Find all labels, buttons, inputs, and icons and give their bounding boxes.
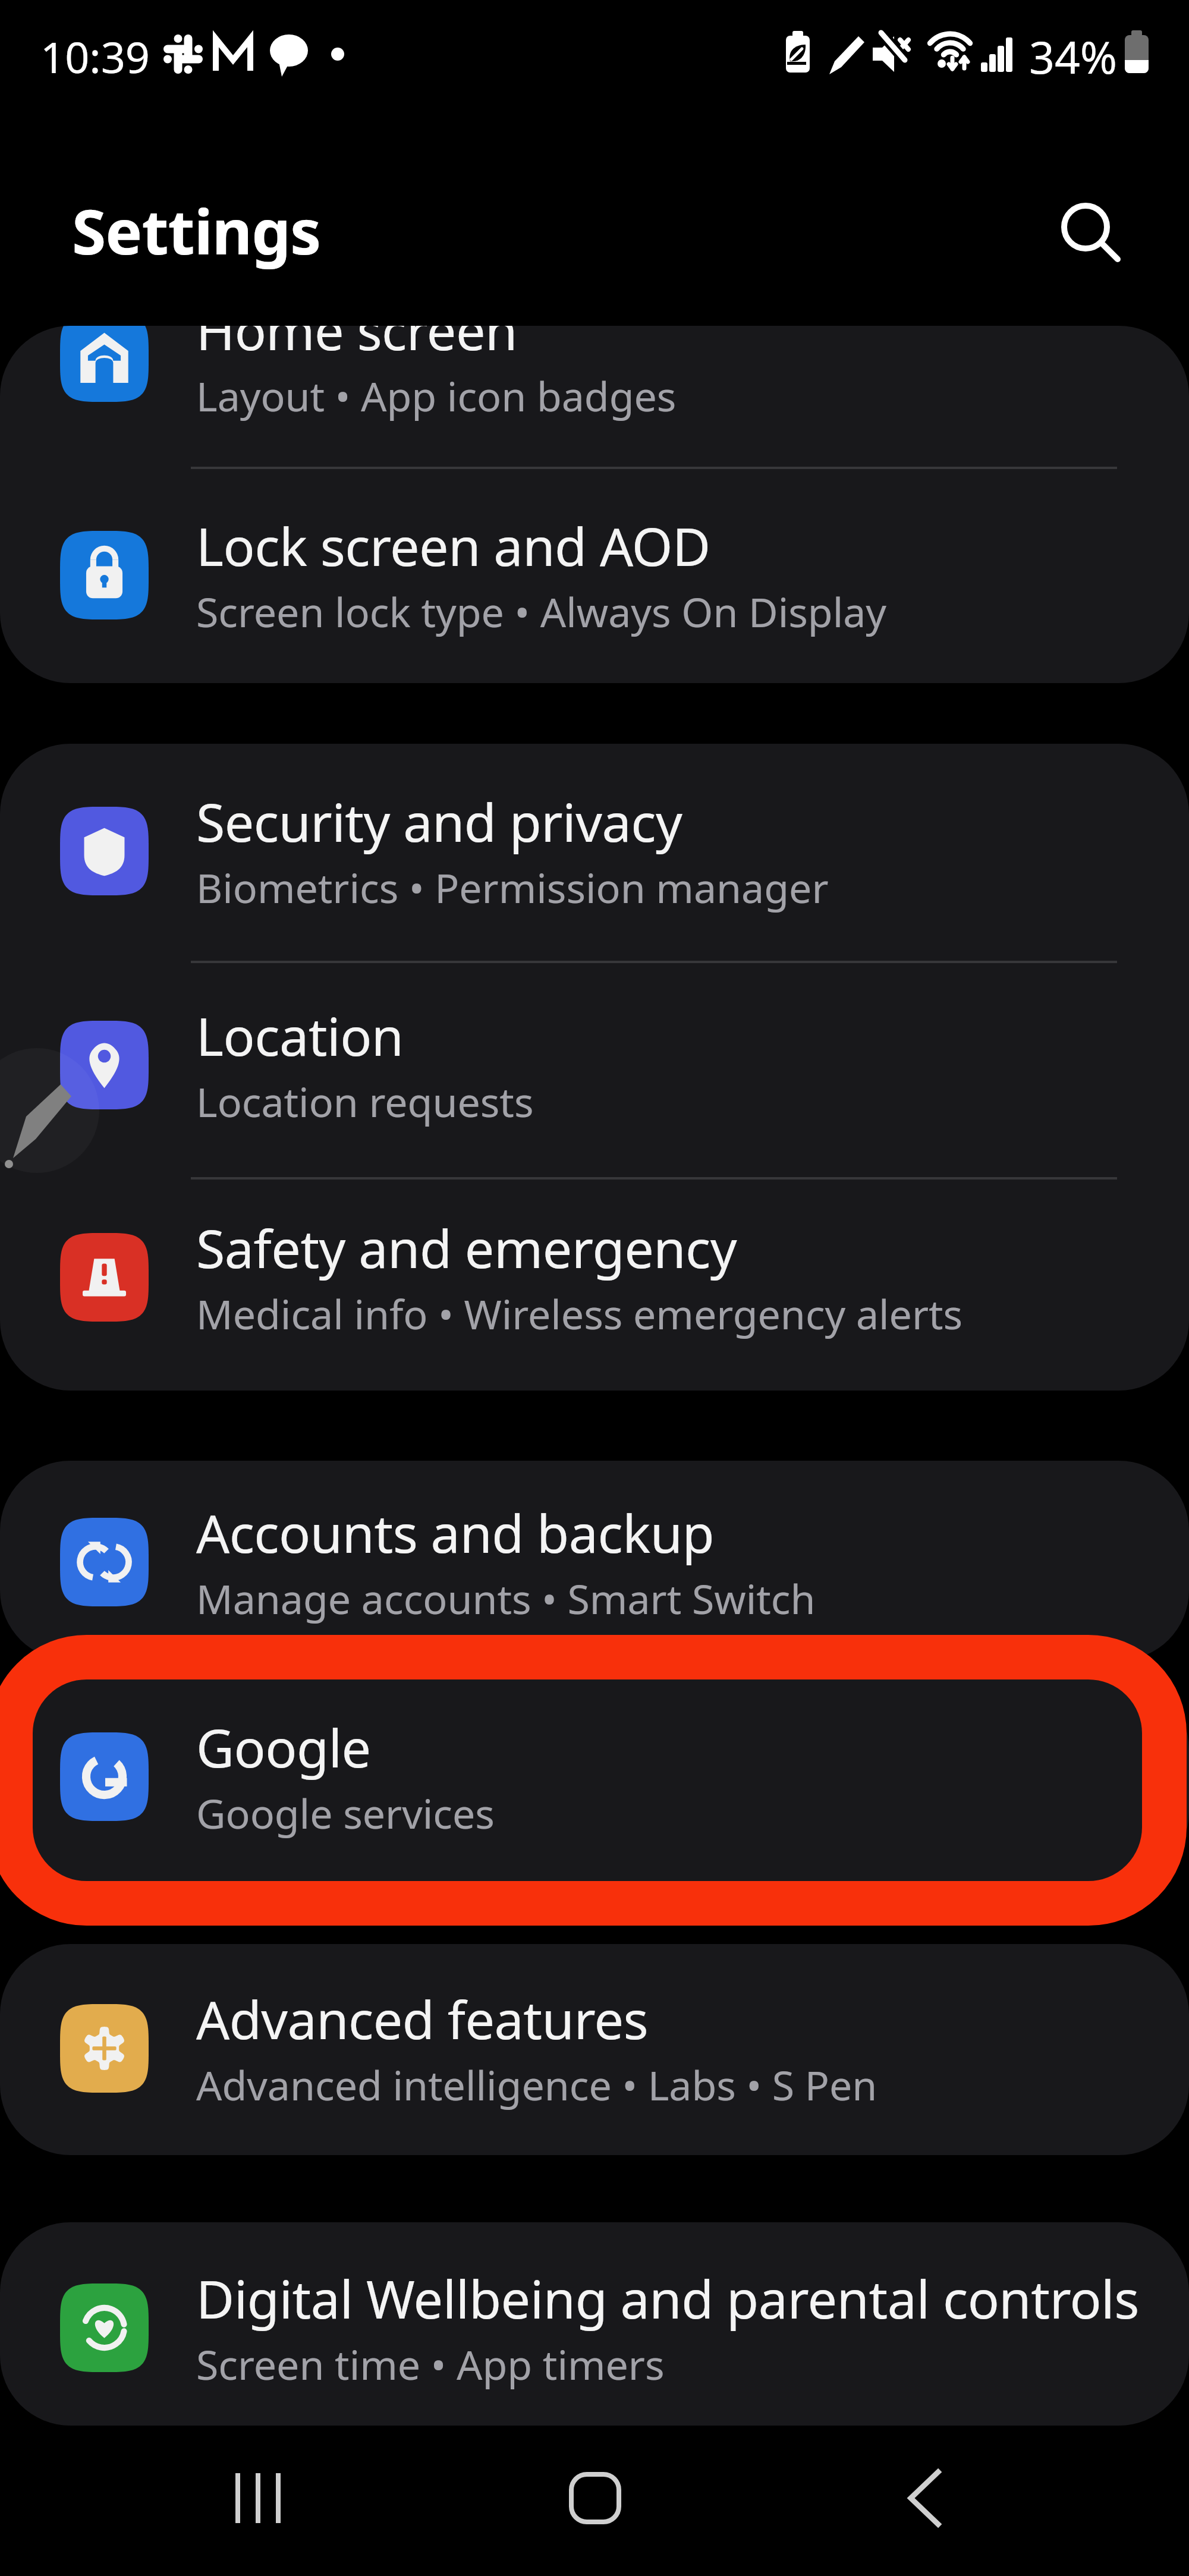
staticText: Layout • App icon badges — [196, 368, 677, 423]
staticText: Screen lock type • Always On Display — [196, 584, 887, 639]
staticText: Safety and emergency — [196, 1212, 737, 1284]
staticText: Google services — [196, 1785, 495, 1841]
staticText: Lock screen and AOD — [196, 510, 710, 581]
staticText: Advanced intelligence • Labs • S Pen — [196, 2057, 877, 2112]
staticText: 10:39 — [40, 27, 150, 86]
button[interactable]: Home screen — [0, 326, 1189, 442]
button[interactable]: Accounts and backup — [0, 1497, 1189, 1644]
button[interactable]: Home — [535, 2437, 654, 2556]
button[interactable]: Recents — [202, 2437, 321, 2556]
button[interactable]: Search — [1038, 180, 1139, 281]
staticText: Security and privacy — [196, 786, 682, 857]
staticText: Manage accounts • Smart Switch — [196, 1571, 816, 1626]
button[interactable]: Digital Wellbeing and parental controls — [0, 2263, 1189, 2410]
staticText: Medical info • Wireless emergency alerts — [196, 1286, 963, 1341]
staticText: 34% — [1029, 26, 1118, 87]
staticText: Location — [196, 1000, 404, 1071]
button[interactable]: Lock screen and AOD — [0, 510, 1189, 658]
staticText: Location requests — [196, 1074, 534, 1129]
staticText: Screen time • App timers — [196, 2336, 665, 2392]
staticText: Accounts and backup — [196, 1497, 715, 1568]
button[interactable]: Back — [865, 2437, 984, 2556]
staticText: Advanced features — [196, 1983, 649, 2055]
button[interactable]: Advanced features — [0, 1983, 1189, 2131]
staticText: Home screen — [196, 326, 517, 366]
button[interactable]: Safety and emergency — [0, 1212, 1189, 1360]
staticText: Biometrics • Permission manager — [196, 860, 829, 915]
button[interactable]: Security and privacy — [0, 786, 1189, 933]
button[interactable]: Location — [0, 1000, 1189, 1147]
staticText: Google — [196, 1712, 371, 1783]
staticText: Settings — [72, 188, 321, 273]
staticText: Digital Wellbeing and parental controls — [196, 2263, 1139, 2334]
button[interactable]: Google — [0, 1712, 1189, 1859]
